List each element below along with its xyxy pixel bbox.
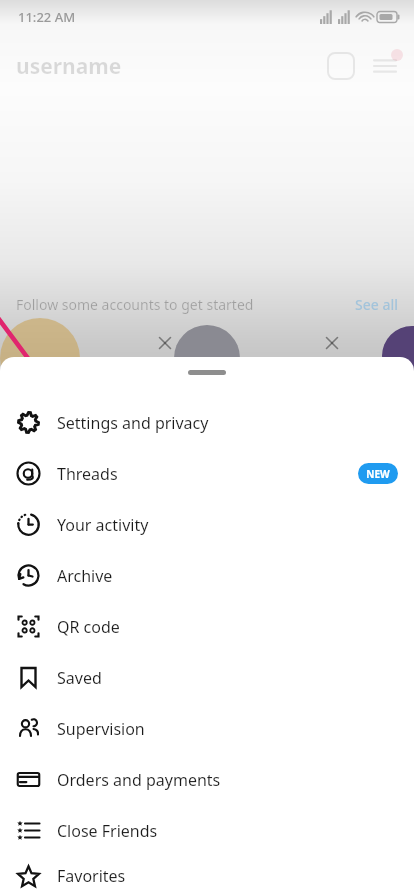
button[interactable]: Saved (0, 652, 414, 703)
staticText: See all (355, 295, 398, 314)
button[interactable]: Favorites (0, 856, 414, 896)
button[interactable]: Your activity (0, 499, 414, 550)
button[interactable]: Archive (0, 550, 414, 601)
staticText: Orders and payments (57, 769, 221, 791)
staticText: Close Friends (57, 820, 158, 842)
button[interactable]: QR code (0, 601, 414, 652)
button[interactable]: Close Friends (0, 805, 414, 856)
staticText: NEW (366, 467, 390, 481)
staticText: Archive (57, 565, 113, 587)
staticText: QR code (57, 616, 120, 638)
staticText: Supervision (57, 718, 145, 740)
button[interactable]: Orders and payments (0, 754, 414, 805)
staticText: 11:22 AM (18, 8, 76, 26)
staticText: Settings and privacy (57, 412, 209, 434)
button[interactable]: Supervision (0, 703, 414, 754)
button[interactable]: Settings and privacy (0, 397, 414, 448)
staticText: Threads (57, 463, 118, 485)
staticText: Favorites (57, 865, 126, 887)
staticText: username (16, 52, 122, 81)
staticText: Your activity (57, 514, 149, 536)
staticText: Saved (57, 667, 102, 689)
staticText: Follow some accounts to get started (16, 295, 254, 314)
button[interactable]: Threads (0, 448, 414, 499)
